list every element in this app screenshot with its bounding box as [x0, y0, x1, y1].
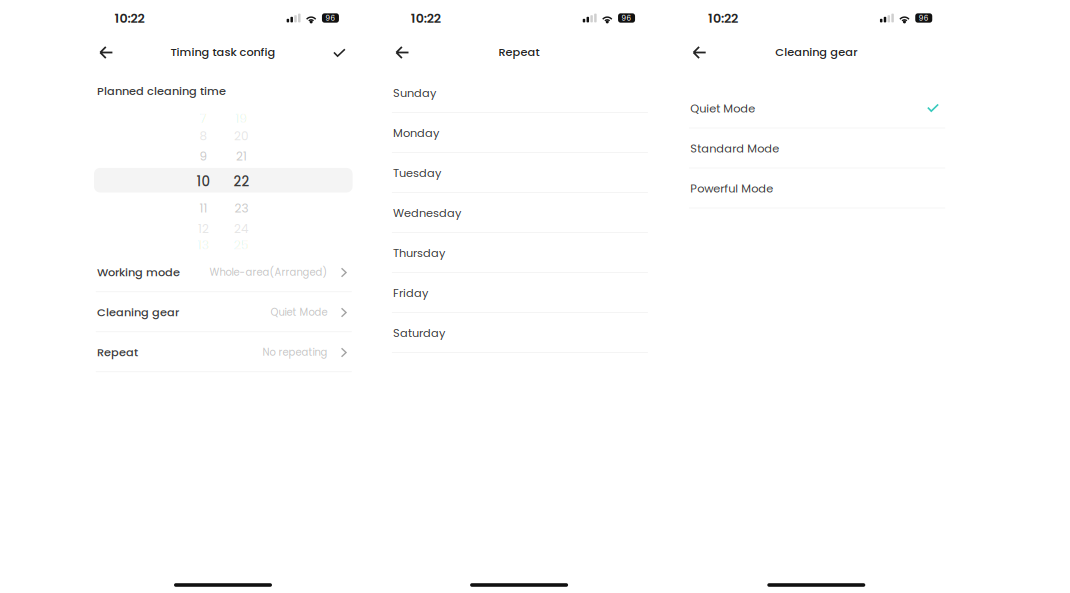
staticText: Quiet Mode [690, 101, 755, 116]
button[interactable]: Thursday [371, 233, 667, 273]
staticText: Cleaning gear [775, 44, 857, 60]
staticText: 8 [199, 128, 207, 144]
staticText: 11 [199, 200, 207, 217]
staticText: Timing task config [170, 44, 275, 60]
button[interactable]: Repeat [75, 332, 371, 372]
staticText: 10:22 [708, 9, 738, 27]
staticText: 24 [234, 220, 249, 237]
staticText: 96 [325, 14, 335, 22]
staticText: Saturday [393, 325, 445, 341]
staticText: 21 [236, 148, 247, 165]
staticText: Quiet Mode [270, 305, 327, 319]
staticText: 9 [199, 148, 207, 165]
staticText: Cleaning gear [97, 304, 179, 320]
staticText: Monday [393, 125, 439, 141]
staticText: Wednesday [393, 205, 461, 221]
staticText: 23 [234, 200, 248, 217]
staticText: 10 [196, 172, 210, 191]
button[interactable]: Tuesday [371, 153, 667, 193]
staticText: 10:22 [411, 9, 441, 27]
button[interactable]: Powerful Mode [668, 168, 964, 208]
button[interactable]: Cleaning gear [75, 292, 371, 332]
staticText: 25 [234, 237, 249, 253]
button[interactable]: Working mode [75, 252, 371, 292]
button[interactable]: Saturday [371, 313, 667, 353]
staticText: 12 [198, 220, 209, 237]
button[interactable]: Back [89, 35, 123, 69]
staticText: Standard Mode [690, 141, 779, 156]
staticText: 22 [233, 172, 249, 191]
staticText: Tuesday [393, 165, 441, 181]
staticText: 10:22 [115, 9, 145, 27]
staticText: 19 [235, 110, 247, 127]
staticText: Planned cleaning time [97, 83, 226, 99]
button[interactable]: Back [683, 35, 717, 69]
button[interactable]: Sunday [371, 73, 667, 113]
staticText: No repeating [262, 345, 327, 359]
button[interactable]: Back [385, 35, 419, 69]
staticText: Sunday [393, 85, 436, 101]
button[interactable]: Confirm [322, 36, 356, 70]
staticText: Powerful Mode [690, 181, 773, 196]
button[interactable]: Wednesday [371, 193, 667, 233]
staticText: 20 [234, 128, 249, 144]
staticText: 96 [919, 14, 929, 22]
staticText: Repeat [499, 44, 540, 60]
staticText: 7 [200, 110, 207, 127]
button[interactable]: Friday [371, 273, 667, 313]
staticText: 13 [198, 237, 209, 253]
staticText: Whole-area(Arranged) [209, 265, 327, 279]
button[interactable]: Standard Mode [668, 128, 964, 168]
staticText: 96 [622, 14, 632, 22]
staticText: Repeat [97, 344, 138, 360]
staticText: Thursday [393, 245, 445, 261]
staticText: Working mode [97, 264, 180, 280]
button[interactable]: Monday [371, 113, 667, 153]
staticText: Friday [393, 285, 428, 301]
button[interactable]: Quiet Mode [668, 88, 964, 128]
